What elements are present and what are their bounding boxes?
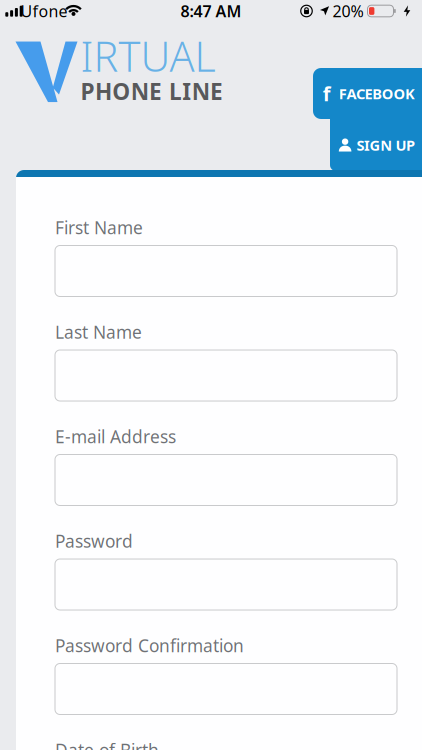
staticText: First Name <box>55 216 143 239</box>
staticText: FACEBOOK <box>339 84 415 103</box>
staticText: f <box>323 80 331 107</box>
staticText: 8:47 AM <box>180 0 241 22</box>
button[interactable]: Password <box>55 559 397 610</box>
staticText: Last Name <box>55 320 142 343</box>
button[interactable]: f <box>313 68 422 119</box>
staticText: IRTUAL <box>80 28 215 83</box>
staticText: PHONE LINE <box>80 76 223 106</box>
staticText: E-mail Address <box>55 425 176 448</box>
staticText: 20% <box>332 0 363 22</box>
staticText: Date of Birth <box>55 738 159 750</box>
button[interactable]: SIGN UP <box>330 119 422 171</box>
staticText: Password Confirmation <box>55 634 244 657</box>
button[interactable]: E-mail Address <box>55 454 397 505</box>
staticText: Ufone <box>20 0 67 22</box>
button[interactable]: Last Name <box>55 350 397 401</box>
staticText: SIGN UP <box>356 135 415 155</box>
staticText: Password <box>55 529 133 552</box>
